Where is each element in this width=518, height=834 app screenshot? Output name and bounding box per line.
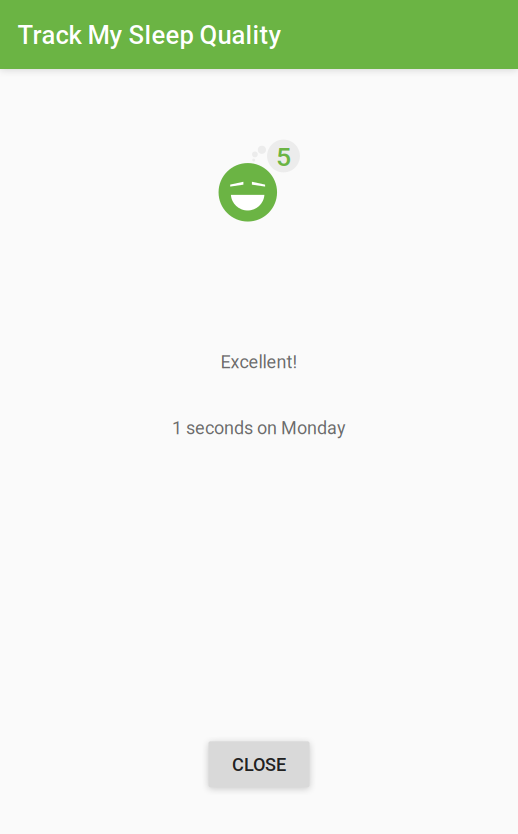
staticText: 5: [276, 141, 291, 173]
button[interactable]: CLOSE: [208, 741, 309, 787]
staticText: Track My Sleep Quality: [17, 20, 281, 50]
staticText: Excellent!: [220, 351, 297, 373]
staticText: CLOSE: [232, 754, 286, 775]
staticText: 1 seconds on Monday: [172, 417, 346, 439]
